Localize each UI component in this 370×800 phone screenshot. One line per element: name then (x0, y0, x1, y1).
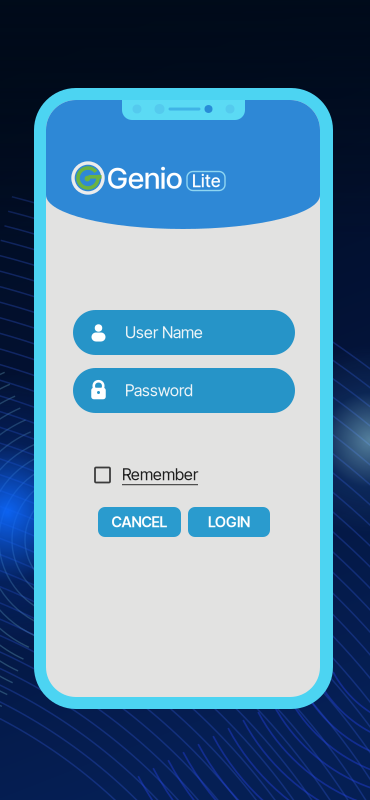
staticText: Genio (107, 160, 182, 196)
button[interactable]: User Name (73, 310, 295, 355)
staticText: LOGIN (208, 513, 250, 531)
button[interactable]: CANCEL (98, 507, 181, 537)
button[interactable]: Password (73, 368, 295, 413)
staticText: User Name (125, 323, 203, 342)
staticText: Password (125, 381, 193, 400)
button[interactable]: LOGIN (188, 507, 270, 537)
button[interactable]: Remember (95, 466, 215, 484)
staticText: CANCEL (111, 513, 167, 531)
staticText: Lite (192, 170, 220, 191)
staticText: Remember (122, 465, 198, 484)
